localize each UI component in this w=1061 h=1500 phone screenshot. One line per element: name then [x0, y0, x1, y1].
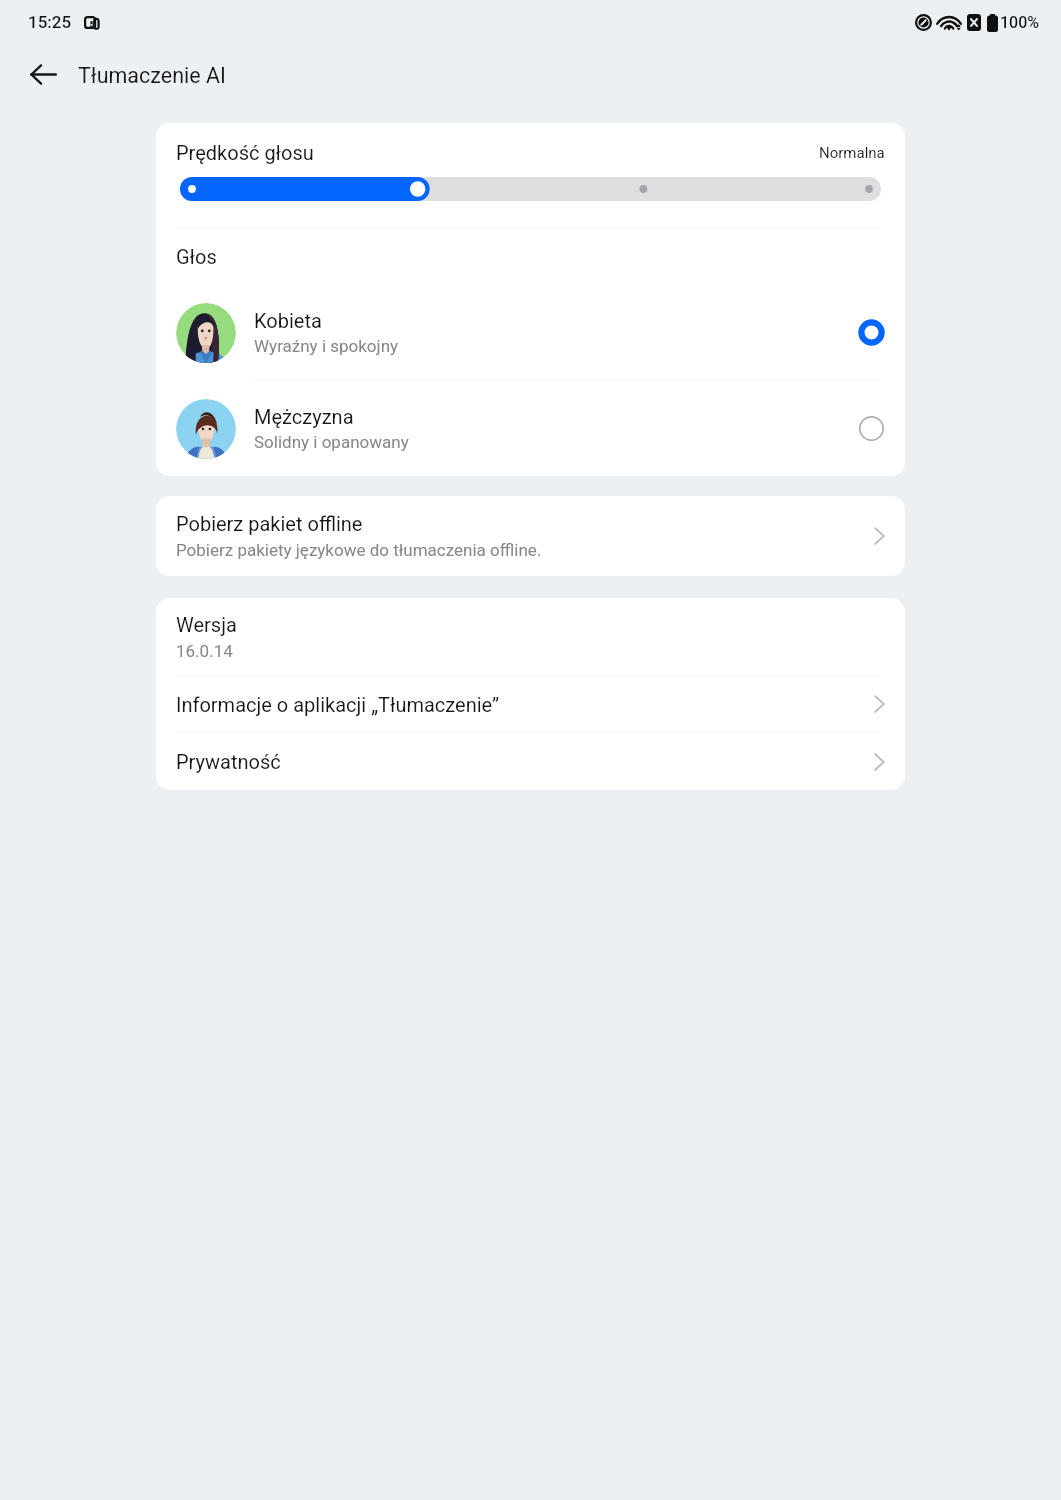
staticText: 100% [1000, 13, 1040, 32]
button[interactable]: Back [15, 49, 71, 100]
staticText: Wyraźny i spokojny [254, 336, 399, 356]
button[interactable]: Prywatność [156, 733, 905, 790]
staticText: Informacje o aplikacji „Tłumaczenie” [176, 693, 500, 716]
staticText: 16.0.14 [176, 641, 233, 661]
staticText: 15:25 [28, 12, 72, 32]
staticText: Pobierz pakiet offline [176, 512, 363, 535]
staticText: Pobierz pakiety językowe do tłumaczenia … [176, 540, 542, 560]
staticText: Głos [176, 245, 217, 268]
staticText: Solidny i opanowany [254, 432, 409, 452]
staticText: Wersja [176, 613, 237, 636]
button[interactable]: Mężczyzna [156, 381, 905, 476]
staticText: Tłumaczenie AI [78, 63, 226, 88]
button[interactable]: Wersja [156, 598, 905, 675]
staticText: Prywatność [176, 750, 281, 773]
staticText: Prędkość głosu [176, 141, 314, 164]
button[interactable]: Pobierz pakiet offline [156, 496, 905, 576]
button[interactable]: Kobieta [156, 285, 905, 380]
button[interactable]: Informacje o aplikacji „Tłumaczenie” [156, 676, 905, 732]
staticText: Normalna [819, 144, 885, 162]
staticText: Kobieta [254, 309, 322, 332]
staticText: Mężczyzna [254, 405, 354, 428]
button[interactable]: Prędkość głosu: Normalna [180, 177, 881, 201]
